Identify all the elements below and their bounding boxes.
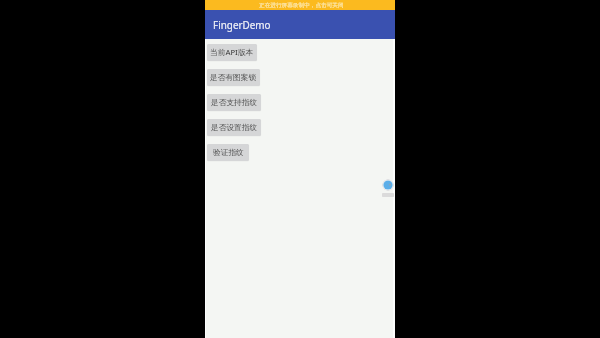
staticText: 是否有图案锁 bbox=[210, 73, 257, 83]
staticText: 是否设置指纹 bbox=[211, 123, 258, 133]
staticText: 正在进行屏幕录制中，点击可关闭 bbox=[259, 2, 344, 9]
button[interactable]: 是否设置指纹 bbox=[207, 119, 261, 136]
button[interactable]: 是否有图案锁 bbox=[207, 69, 260, 86]
button[interactable]: 是否支持指纹 bbox=[207, 94, 261, 111]
staticText: 验证指纹 bbox=[213, 148, 244, 158]
button[interactable]: 验证指纹 bbox=[207, 144, 249, 161]
button[interactable]: Assistant bbox=[382, 179, 394, 191]
staticText: 当前API版本 bbox=[210, 47, 254, 58]
staticText: 是否支持指纹 bbox=[211, 98, 258, 108]
staticText: FingerDemo bbox=[213, 18, 271, 31]
button[interactable]: 当前API版本 bbox=[207, 44, 257, 61]
